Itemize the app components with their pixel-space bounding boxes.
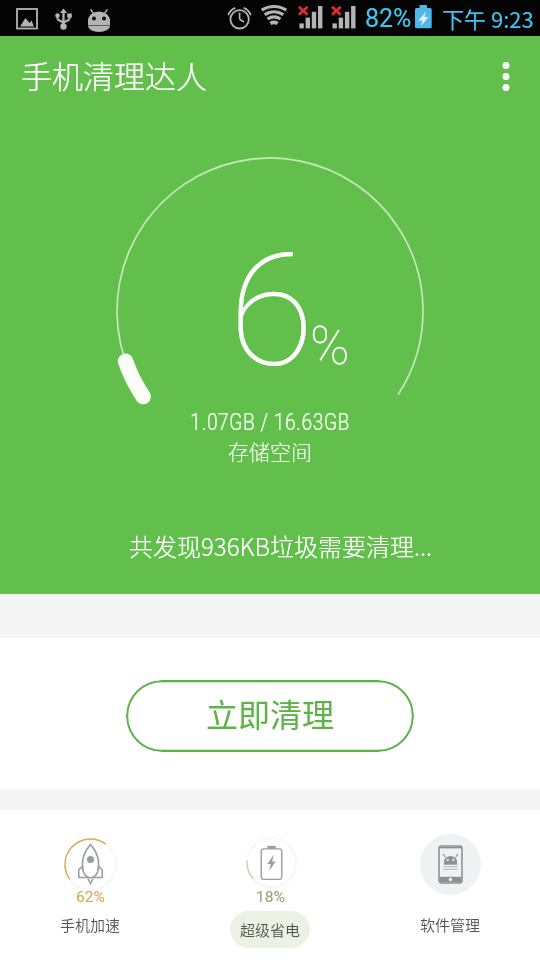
staticText: 存储空间 [228, 436, 312, 466]
staticText: 下午 9:23 [442, 2, 534, 34]
button[interactable]: 18% [180, 810, 360, 960]
button[interactable]: 立即清理 [126, 680, 414, 752]
staticText: 18% [256, 888, 285, 906]
staticText: 62% [76, 888, 105, 906]
staticText: 手机清理达人 [21, 52, 207, 97]
staticText: % [310, 315, 350, 377]
staticText: 软件管理 [420, 914, 481, 936]
button[interactable]: More options [485, 56, 526, 97]
staticText: 1.07GB / 16.63GB [190, 409, 350, 436]
staticText: 6 [229, 220, 314, 402]
staticText: 立即清理 [206, 690, 335, 736]
button[interactable]: 软件管理 [360, 810, 540, 960]
staticText: 82% [365, 4, 412, 33]
staticText: 手机加速 [60, 914, 121, 936]
staticText: 共发现936KB垃圾需要清理... [129, 528, 432, 563]
button[interactable]: 62% [0, 810, 180, 960]
staticText: 超级省电 [240, 919, 301, 941]
